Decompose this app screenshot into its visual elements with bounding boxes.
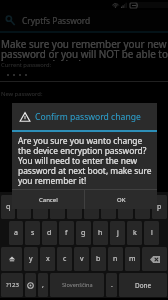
- button[interactable]: s: [25, 221, 40, 245]
- button[interactable]: k: [127, 221, 142, 245]
- staticText: x: [46, 254, 50, 264]
- button[interactable]: OK: [85, 190, 157, 209]
- button[interactable]: r: [50, 195, 65, 219]
- staticText: Done: [135, 281, 152, 290]
- button[interactable]: i: [118, 195, 133, 219]
- button[interactable]: a: [9, 221, 23, 245]
- staticText: ,: [42, 280, 44, 290]
- button[interactable]: b: [91, 247, 106, 271]
- staticText: b: [96, 254, 101, 264]
- staticText: f: [65, 228, 68, 238]
- button[interactable]: d: [42, 221, 57, 245]
- button[interactable]: Cancel: [12, 190, 84, 209]
- staticText: Current password:: [1, 61, 52, 69]
- staticText: Are you sure you wanto change the device…: [18, 135, 152, 186]
- button[interactable]: e: [33, 195, 48, 219]
- staticText: d: [47, 228, 52, 238]
- staticText: n: [113, 254, 118, 264]
- button[interactable]: ,: [38, 273, 48, 297]
- staticText: Make sure you remember your new password…: [1, 37, 168, 61]
- button[interactable]: q: [1, 195, 15, 219]
- button[interactable]: x: [40, 247, 55, 271]
- button[interactable]: Shift: [1, 247, 22, 271]
- button[interactable]: f: [59, 221, 74, 245]
- staticText: y: [29, 254, 33, 264]
- staticText: Cancel: [39, 196, 58, 204]
- staticText: v: [80, 254, 84, 264]
- staticText: Cryptfs Password: [22, 15, 91, 26]
- button[interactable]: m: [125, 247, 140, 271]
- button[interactable]: ?123: [1, 273, 23, 297]
- staticText: New password:: [1, 90, 43, 98]
- staticText: c: [63, 254, 67, 264]
- staticText: .: [111, 280, 113, 290]
- staticText: l: [151, 228, 153, 238]
- staticText: m: [129, 254, 136, 264]
- button[interactable]: j: [110, 221, 125, 245]
- button[interactable]: Slovenščina: [50, 273, 104, 297]
- button[interactable]: g: [76, 221, 91, 245]
- button[interactable]: Backspace: [142, 247, 167, 271]
- staticText: q: [6, 202, 11, 212]
- button[interactable]: l: [144, 221, 159, 245]
- button[interactable]: n: [108, 247, 123, 271]
- button[interactable]: z: [84, 195, 99, 219]
- staticText: p: [157, 202, 162, 212]
- button[interactable]: c: [57, 247, 72, 271]
- staticText: Confirm password change: [35, 111, 141, 123]
- button[interactable]: .: [106, 273, 117, 297]
- staticText: k: [133, 228, 137, 238]
- staticText: s: [31, 228, 35, 238]
- button[interactable]: v: [74, 247, 89, 271]
- staticText: g: [81, 228, 86, 238]
- button[interactable]: Done: [119, 273, 167, 297]
- staticText: Slovenščina: [62, 281, 93, 289]
- staticText: ?123: [6, 281, 19, 289]
- staticText: h: [98, 228, 103, 238]
- button[interactable]: Settings: [25, 273, 36, 297]
- staticText: OK: [117, 196, 126, 204]
- button[interactable]: p: [152, 195, 167, 219]
- button[interactable]: y: [24, 247, 38, 271]
- other: App icon: [5, 15, 16, 26]
- staticText: j: [117, 228, 119, 238]
- button[interactable]: h: [93, 221, 108, 245]
- staticText: a: [14, 228, 18, 238]
